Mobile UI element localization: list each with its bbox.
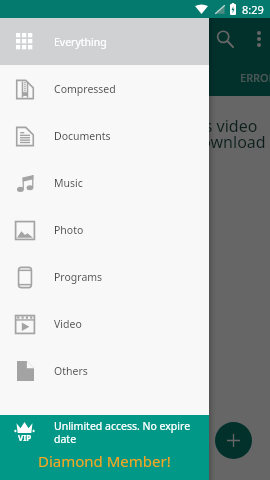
staticText: Diamond Member! [38,451,171,471]
button[interactable]: ERROR [229,59,270,96]
button[interactable]: Video [0,300,209,347]
button[interactable]: DOWNLOADING [6,59,110,96]
button[interactable]: Everything [0,18,209,65]
staticText: VIP [18,432,32,443]
staticText: DOWNLOADING [15,70,101,85]
staticText: Documents [54,129,111,143]
staticText: Music [54,176,83,190]
button[interactable]: Photo [0,206,209,253]
button[interactable]: FINISHED [110,59,192,96]
staticText: No downloads. Tap + to add s video [0,115,258,137]
staticText: 8:29 [242,2,264,17]
staticText: Video [54,317,82,331]
staticText: Photo [54,223,84,237]
staticText: Compressed [54,82,116,96]
button[interactable]: Others [0,347,209,394]
button[interactable]: Documents [0,112,209,159]
staticText: ERROR [240,70,270,85]
staticText: a new item below to start ownload [7,131,266,153]
staticText: Everything [54,35,107,49]
button[interactable]: More options [243,23,270,54]
button[interactable]: Programs [0,253,209,300]
button[interactable]: Compressed [0,65,209,112]
staticText: Others [54,364,88,378]
button[interactable]: Search [206,20,244,58]
button[interactable]: VIP [0,415,209,480]
button[interactable]: Add download [215,422,252,459]
staticText: Unlimited access. No expire date [54,419,202,446]
staticText: Programs [54,270,103,284]
button[interactable]: Music [0,159,209,206]
